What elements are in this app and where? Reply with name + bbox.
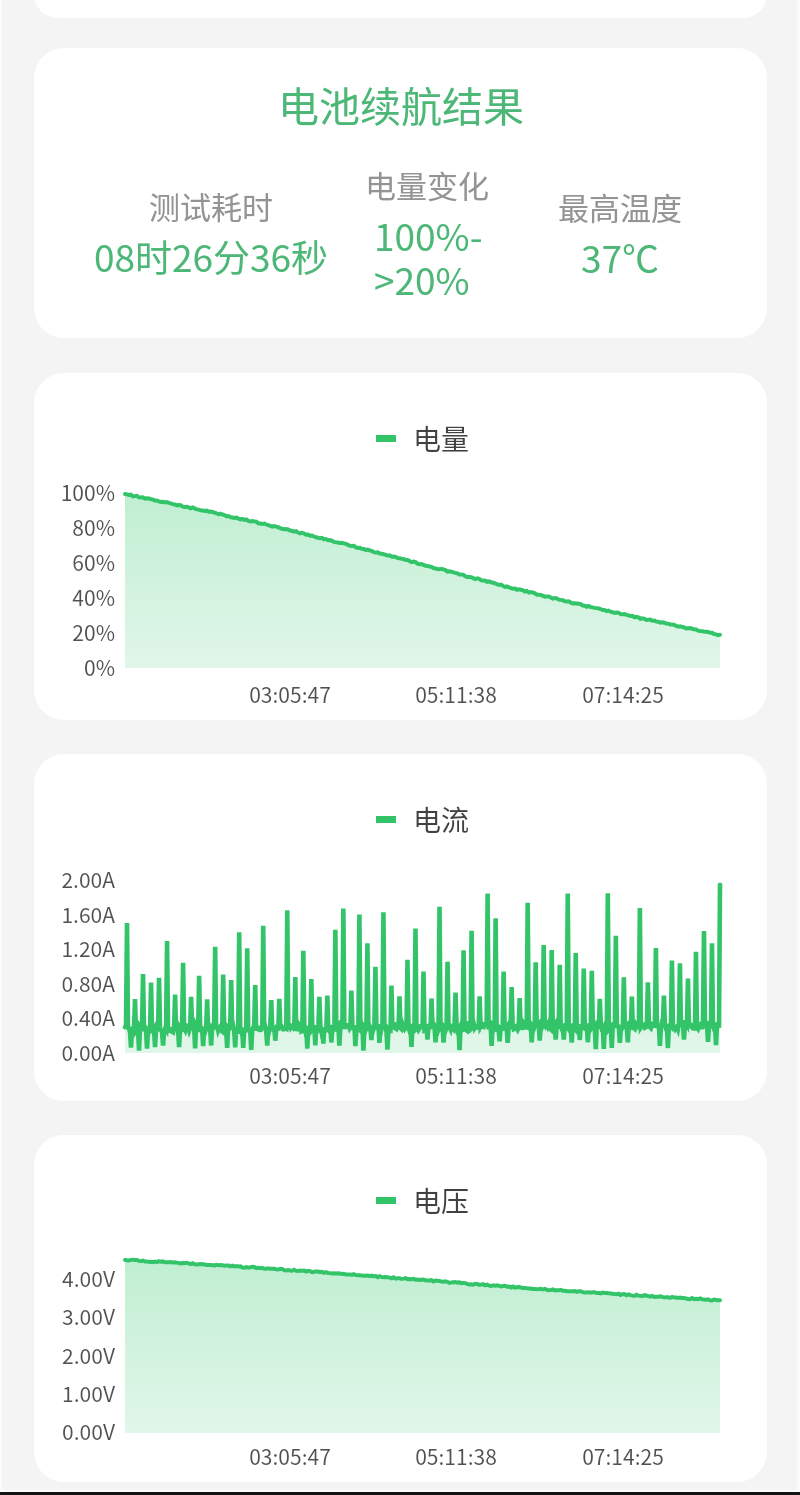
staticText: 2.00V (34, 1340, 115, 1370)
button[interactable]: 电压 (34, 1135, 767, 1482)
staticText: 07:14:25 (563, 1060, 683, 1090)
staticText: 0.80A (34, 968, 115, 998)
staticText: 电压 (413, 1180, 470, 1221)
staticText: 最高温度 (558, 184, 682, 229)
staticText: 100% (34, 477, 115, 507)
staticText: 80% (34, 512, 115, 542)
staticText: 07:14:25 (563, 1441, 683, 1471)
staticText: 电流 (413, 799, 470, 840)
staticText: 37℃ (556, 230, 684, 284)
staticText: 电池续航结果 (278, 74, 524, 133)
staticText: 20% (34, 617, 115, 647)
staticText: 40% (34, 582, 115, 612)
staticText: 0.00A (34, 1037, 115, 1067)
button[interactable]: 电量 (34, 373, 767, 720)
staticText: 电量 (413, 418, 470, 459)
staticText: 03:05:47 (230, 1060, 350, 1090)
staticText: 05:11:38 (396, 1060, 516, 1090)
staticText: 05:11:38 (396, 679, 516, 709)
button[interactable]: 电量 (376, 418, 470, 459)
staticText: 0.40A (34, 1002, 115, 1032)
staticText: 0% (34, 652, 115, 682)
staticText: 2.00A (34, 864, 115, 894)
staticText: 05:11:38 (396, 1441, 516, 1471)
staticText: 电量变化 (365, 162, 489, 207)
button[interactable]: 电流 (376, 799, 470, 840)
staticText: 03:05:47 (230, 679, 350, 709)
staticText: 100%->20% (374, 208, 502, 306)
staticText: 3.00V (34, 1301, 115, 1331)
button[interactable]: 电压 (376, 1180, 470, 1221)
button[interactable]: 电池续航结果 (34, 48, 767, 338)
staticText: 测试耗时 (149, 183, 273, 228)
staticText: 60% (34, 547, 115, 577)
staticText: 08时26分36秒 (86, 229, 336, 283)
staticText: 1.20A (34, 933, 115, 963)
staticText: 0.00V (34, 1416, 115, 1446)
staticText: 4.00V (34, 1263, 115, 1293)
button[interactable]: 电流 (34, 754, 767, 1101)
staticText: 03:05:47 (230, 1441, 350, 1471)
staticText: 1.00V (34, 1378, 115, 1408)
staticText: 1.60A (34, 899, 115, 929)
staticText: 07:14:25 (563, 679, 683, 709)
